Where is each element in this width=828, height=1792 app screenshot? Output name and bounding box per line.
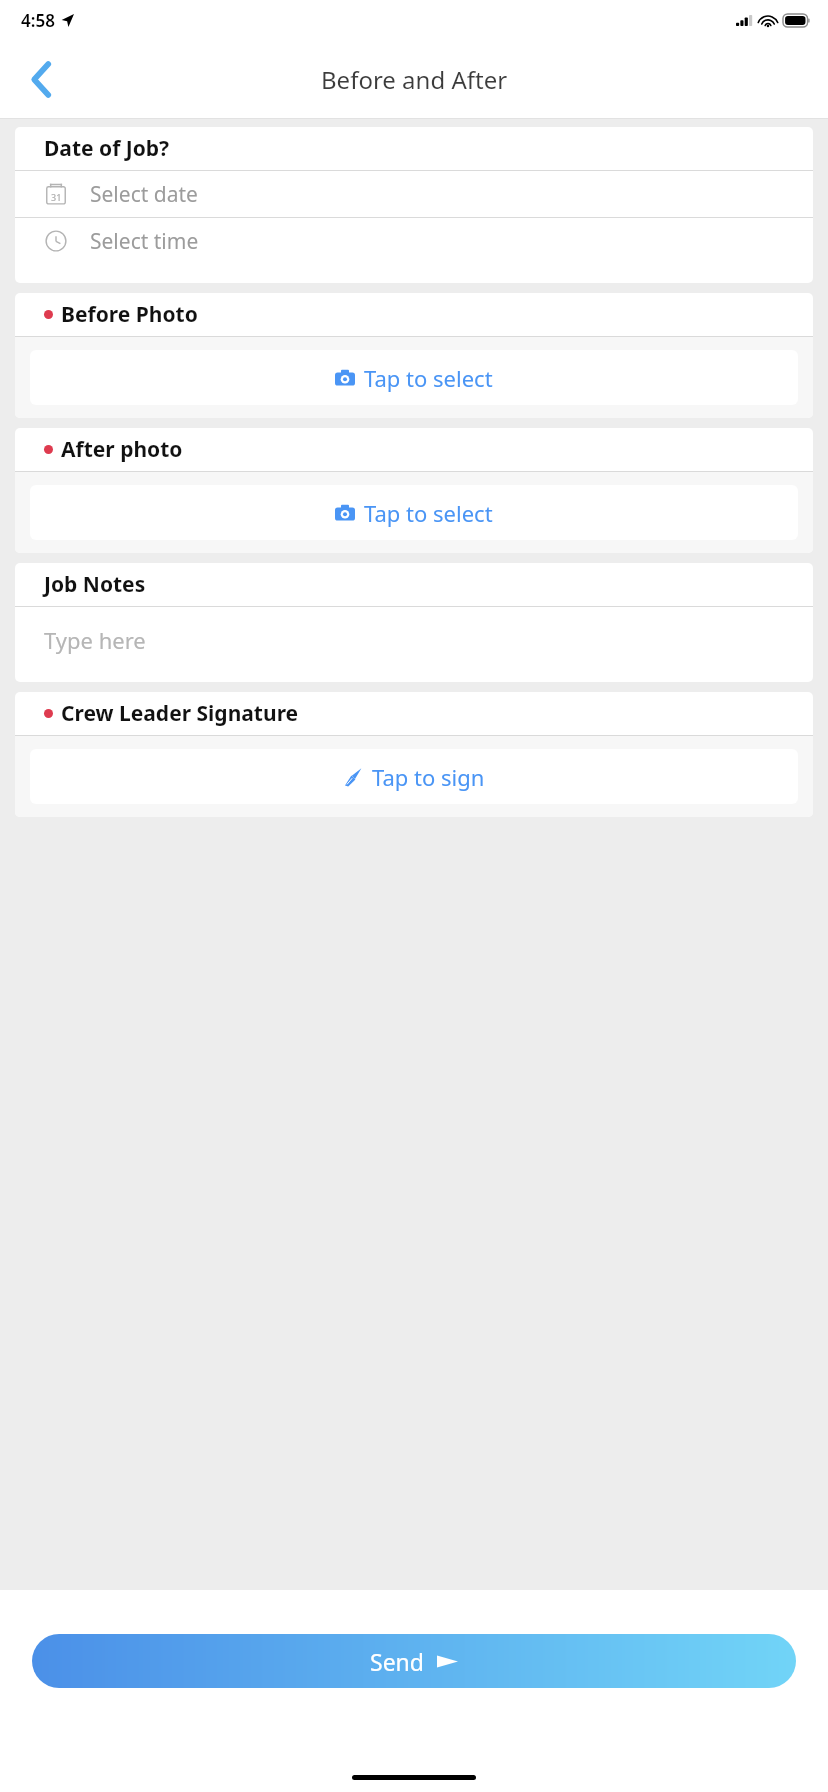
button[interactable]: Select time <box>15 218 813 264</box>
button[interactable]: Tap to sign <box>30 749 798 804</box>
staticText: 31 <box>51 191 62 203</box>
button[interactable]: 31 <box>15 171 813 217</box>
button[interactable]: Tap to select <box>30 350 798 405</box>
staticText: Select time <box>90 227 199 256</box>
staticText: 4:58 <box>21 9 55 32</box>
staticText: After photo <box>61 435 183 464</box>
staticText: Send <box>370 1646 424 1677</box>
button[interactable]: Type here <box>15 607 813 682</box>
staticText: Tap to select <box>364 498 493 528</box>
staticText: Type here <box>44 625 146 655</box>
staticText: Tap to sign <box>372 762 485 792</box>
staticText: Before and After <box>321 63 508 96</box>
staticText: Before Photo <box>61 300 198 329</box>
staticText: Tap to select <box>364 363 493 393</box>
button[interactable]: Tap to select <box>30 485 798 540</box>
staticText: Crew Leader Signature <box>61 699 299 728</box>
staticText: Date of Job? <box>44 134 170 163</box>
button[interactable]: Send <box>32 1634 796 1688</box>
button[interactable]: Back <box>12 50 70 108</box>
staticText: Job Notes <box>44 570 146 599</box>
staticText: Select date <box>90 180 198 209</box>
